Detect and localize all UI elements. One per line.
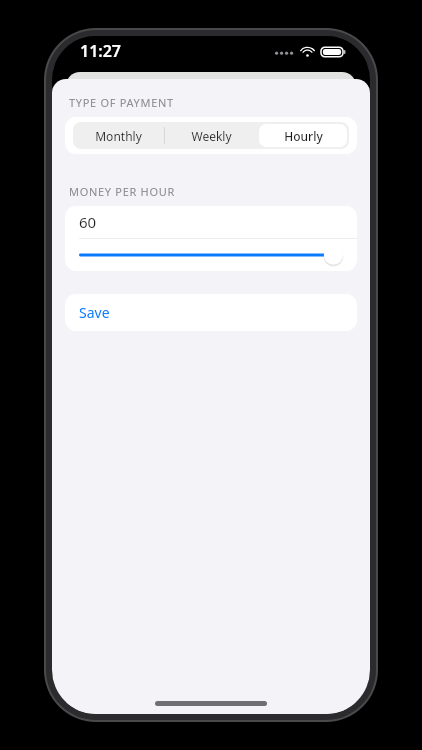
button[interactable]: Money per hour slider bbox=[65, 239, 357, 271]
button[interactable]: Weekly bbox=[167, 124, 255, 147]
staticText: Hourly bbox=[284, 128, 323, 144]
staticText: Monthly bbox=[95, 128, 142, 144]
staticText: Weekly bbox=[191, 128, 232, 144]
staticText: TYPE OF PAYMENT bbox=[69, 95, 174, 110]
button[interactable]: 60 bbox=[65, 206, 357, 238]
button[interactable]: Save bbox=[65, 294, 357, 331]
staticText: MONEY PER HOUR bbox=[69, 184, 176, 199]
staticText: Save bbox=[79, 303, 110, 322]
button[interactable]: Hourly bbox=[259, 124, 347, 147]
button[interactable]: Monthly bbox=[75, 124, 162, 147]
staticText: 60 bbox=[79, 212, 97, 232]
staticText: 11:27 bbox=[80, 40, 122, 62]
